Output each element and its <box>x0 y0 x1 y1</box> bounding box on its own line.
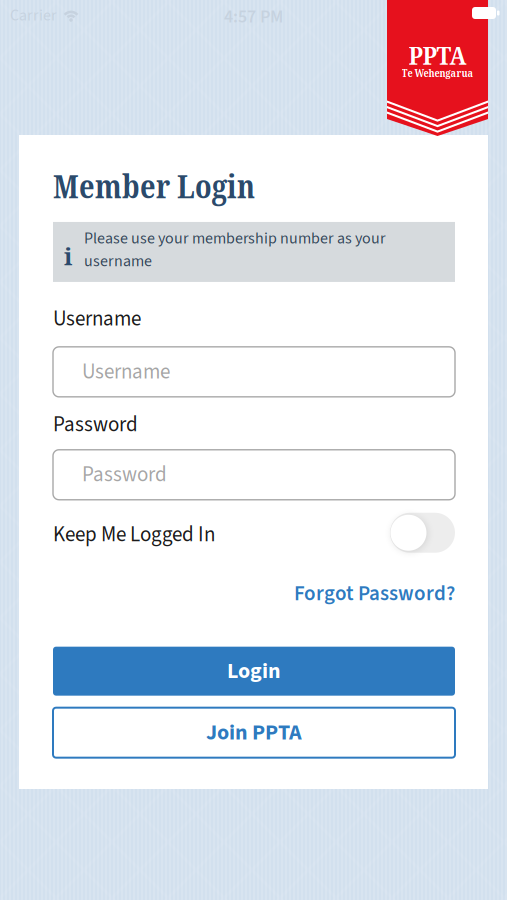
staticText: Join PPTA <box>206 717 302 748</box>
staticText: username <box>84 250 152 273</box>
staticText: Password <box>82 460 167 490</box>
staticText: Carrier <box>10 4 57 27</box>
button[interactable]: Keep Me Logged In <box>390 513 455 553</box>
staticText: Keep Me Logged In <box>53 520 215 550</box>
staticText: 4:57 PM <box>224 4 283 30</box>
staticText: Password <box>53 410 138 440</box>
button[interactable]: Forgot Password? <box>294 579 455 609</box>
staticText: Username <box>82 357 170 387</box>
secureTextField[interactable]: Password <box>67 460 441 490</box>
textField[interactable]: Username <box>67 357 441 387</box>
staticText: Username <box>53 304 141 334</box>
staticText: Forgot Password? <box>294 579 455 609</box>
staticText: Member Login <box>53 163 255 208</box>
staticText: Te Wehengarua <box>401 66 473 80</box>
button[interactable]: Join PPTA <box>53 708 455 758</box>
button[interactable]: Login <box>53 647 455 696</box>
staticText: Password <box>67 460 152 490</box>
staticText: Login <box>227 655 281 687</box>
staticText: Please use your membership number as you… <box>84 227 386 250</box>
staticText: Username <box>67 357 155 387</box>
staticText: i <box>64 240 72 272</box>
staticText: PPTA <box>408 38 466 72</box>
